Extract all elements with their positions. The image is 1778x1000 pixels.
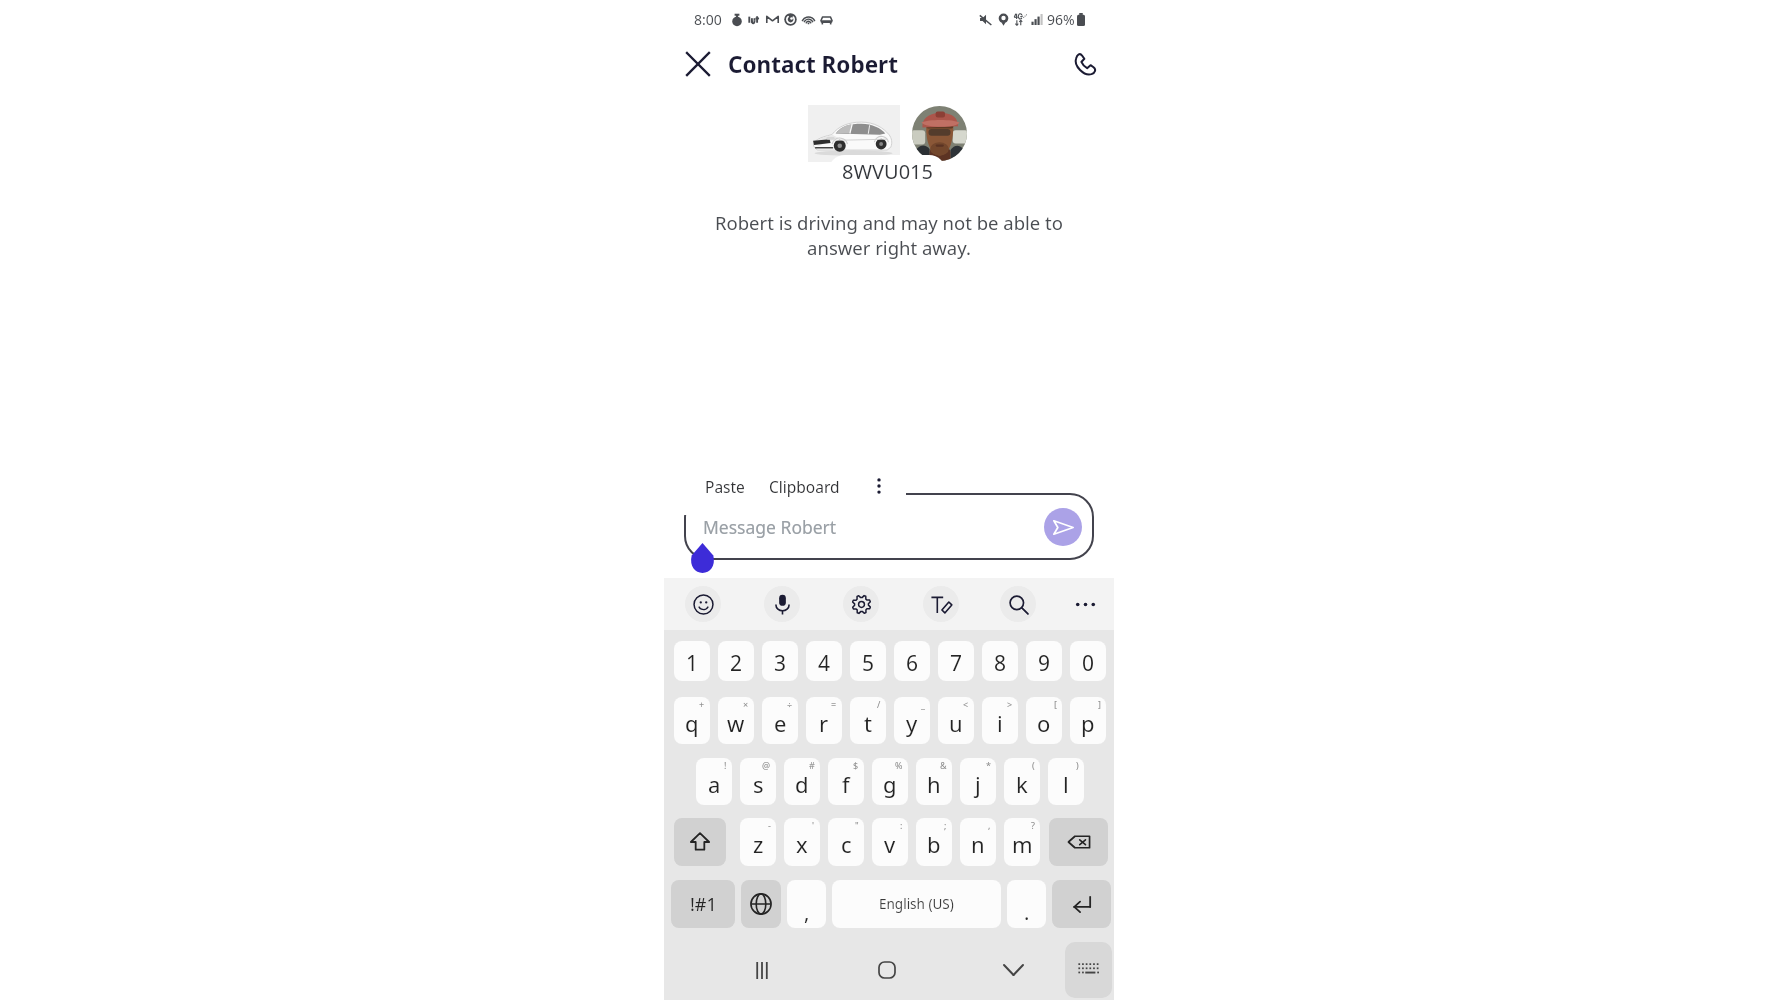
staticText: j [975,769,981,799]
staticText: 3 [774,649,787,678]
staticText: # [809,759,815,771]
button[interactable]: h [916,758,952,805]
button[interactable]: 4 [806,641,842,681]
staticText: Contact Robert [728,49,898,80]
staticText: % [895,759,903,771]
button[interactable]: Shift [674,818,726,866]
staticText: d [795,769,809,799]
staticText: ? [1031,819,1035,831]
staticText: @ [762,759,771,771]
staticText: + [699,698,705,710]
staticText: = [831,698,837,710]
button[interactable]: 1 [674,641,710,681]
button[interactable]: g [872,758,908,805]
button[interactable]: e [762,697,798,744]
button[interactable]: d [784,758,820,805]
button[interactable]: Enter [1052,880,1111,928]
button[interactable]: Settings [838,578,884,630]
button[interactable]: Close [678,44,718,84]
button[interactable]: Language [741,880,781,928]
button[interactable]: b [916,818,952,866]
staticText: 8:00 [694,10,722,29]
staticText: b [927,829,941,859]
button[interactable]: !#1 [671,880,735,928]
staticText: × [743,698,749,710]
button[interactable]: . [1007,880,1046,928]
staticText: 4 [818,649,831,678]
staticText: ) [1076,759,1079,771]
staticText: ! [724,759,727,771]
staticText: , [988,819,991,831]
staticText: [ [1054,698,1057,710]
button[interactable]: v [872,818,908,866]
button[interactable]: f [828,758,864,805]
staticText: - [768,819,771,831]
button[interactable]: t [850,697,886,744]
staticText: t [864,708,872,738]
button[interactable]: English (US) [832,880,1001,928]
staticText: 8 [994,649,1007,678]
button[interactable]: s [740,758,776,805]
button[interactable]: 7 [938,641,974,681]
button[interactable]: 2 [718,641,754,681]
button[interactable]: o [1026,697,1062,744]
button[interactable]: 5 [850,641,886,681]
button[interactable]: m [1004,818,1040,866]
staticText: g [883,769,897,799]
staticText: 9 [1038,649,1051,678]
button[interactable]: x [784,818,820,866]
button[interactable]: j [960,758,996,805]
button[interactable]: 6 [894,641,930,681]
staticText: ÷ [787,698,793,710]
staticText: Robert is driving and may not be able to… [676,210,1102,261]
button[interactable]: 0 [1070,641,1106,681]
staticText: q [685,708,699,738]
button[interactable]: Emoji [680,578,726,630]
button[interactable]: Voice input [759,578,805,630]
staticText: 2 [730,649,743,678]
button[interactable]: w [718,697,754,744]
button[interactable]: y [894,697,930,744]
staticText: 0 [1082,649,1095,678]
button[interactable]: Send [1044,508,1082,546]
staticText: _ [921,698,925,710]
staticText: x [796,829,808,859]
button[interactable]: Search [995,578,1041,630]
button[interactable]: More options [866,473,892,499]
button[interactable]: p [1070,697,1106,744]
button[interactable]: Handwriting [918,578,964,630]
button[interactable]: Hide keyboard [987,940,1039,1000]
button[interactable]: k [1004,758,1040,805]
staticText: * [986,759,991,771]
staticText: f [842,769,850,799]
button[interactable]: Recents [736,940,788,1000]
button[interactable]: 8 [982,641,1018,681]
button[interactable]: 3 [762,641,798,681]
button[interactable]: , [787,880,826,928]
staticText: o [1037,708,1051,738]
button[interactable]: Call [1064,43,1106,85]
staticText: ] [1098,698,1101,710]
button[interactable]: z [740,818,776,866]
button[interactable]: c [828,818,864,866]
button[interactable]: Clipboard [769,476,840,497]
button[interactable]: u [938,697,974,744]
button[interactable]: q [674,697,710,744]
button[interactable]: More [1062,578,1108,630]
button[interactable]: 9 [1026,641,1062,681]
button[interactable]: l [1048,758,1084,805]
button[interactable]: a [696,758,732,805]
button[interactable]: n [960,818,996,866]
button[interactable]: Paste [705,476,745,497]
staticText: / [877,698,881,710]
staticText: & [940,759,947,771]
button[interactable]: Home [861,940,913,1000]
staticText: k [1016,769,1028,799]
button[interactable]: Backspace [1049,818,1108,866]
staticText: u [949,708,963,738]
button[interactable]: Keyboard switch [1065,942,1112,998]
staticText: 96% [1047,10,1075,29]
button[interactable]: i [982,697,1018,744]
button[interactable]: r [806,697,842,744]
staticText: : [900,819,903,831]
